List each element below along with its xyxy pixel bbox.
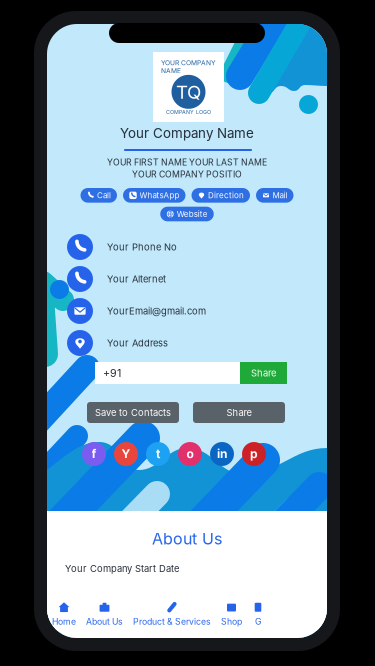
button[interactable]: Home xyxy=(47,597,81,631)
staticText: Product & Services xyxy=(133,616,211,627)
button[interactable]: WhatsApp xyxy=(123,188,185,203)
staticText: Shop xyxy=(221,616,242,627)
staticText: YOUR COMPANY POSITIO xyxy=(132,169,242,179)
staticText: Your Company Name xyxy=(120,125,254,141)
button[interactable]: Y xyxy=(114,442,138,466)
staticText: Call xyxy=(97,190,111,200)
button[interactable]: Your Alternet xyxy=(67,266,297,292)
button[interactable]: Save to Contacts xyxy=(87,402,179,423)
staticText: Home xyxy=(52,616,76,627)
button[interactable]: o xyxy=(178,442,202,466)
staticText: p xyxy=(250,447,258,461)
staticText: COMPANY LOGO xyxy=(166,109,211,115)
staticText: YOUR FIRST NAME YOUR LAST NAME xyxy=(107,157,267,167)
staticText: Direction xyxy=(208,190,244,200)
staticText: o xyxy=(186,447,193,461)
button[interactable]: YourEmail@gmail.com xyxy=(67,298,297,324)
staticText: f xyxy=(91,447,96,461)
button[interactable]: Share xyxy=(240,362,287,384)
staticText: Save to Contacts xyxy=(95,407,171,418)
button[interactable]: Share xyxy=(193,402,285,423)
staticText: Your Alternet xyxy=(107,273,166,285)
staticText: TQ xyxy=(176,80,201,103)
button[interactable]: Call xyxy=(80,188,117,203)
staticText: YOUR COMPANY NAME xyxy=(161,59,216,75)
button[interactable]: Product & Services xyxy=(128,597,216,631)
staticText: G xyxy=(255,616,261,627)
staticText: Share xyxy=(251,367,276,379)
button[interactable]: Mail xyxy=(256,188,293,203)
staticText: +91 xyxy=(103,366,121,379)
staticText: WhatsApp xyxy=(139,190,179,200)
button[interactable]: Shop xyxy=(216,597,247,631)
button[interactable]: p xyxy=(242,442,266,466)
staticText: t xyxy=(156,447,160,461)
button[interactable]: Website xyxy=(160,207,214,221)
button[interactable]: in xyxy=(210,442,234,466)
button[interactable]: f xyxy=(82,442,106,466)
button[interactable]: About Us xyxy=(81,597,128,631)
staticText: Y xyxy=(121,447,130,461)
button[interactable]: G xyxy=(247,597,269,631)
staticText: YourEmail@gmail.com xyxy=(107,305,206,317)
staticText: Mail xyxy=(272,190,287,200)
button[interactable]: Your Address xyxy=(67,330,297,356)
staticText: Your Address xyxy=(107,337,168,349)
staticText: Website xyxy=(177,209,208,219)
staticText: Your Company Start Date xyxy=(65,563,179,574)
staticText: Share xyxy=(226,407,251,418)
button[interactable]: t xyxy=(146,442,170,466)
staticText: Your Phone No xyxy=(107,241,177,253)
staticText: About Us xyxy=(86,616,123,627)
staticText: in xyxy=(217,447,227,461)
staticText: About Us xyxy=(152,529,222,548)
button[interactable]: Direction xyxy=(191,188,250,203)
button[interactable]: Your Phone No xyxy=(67,234,297,260)
